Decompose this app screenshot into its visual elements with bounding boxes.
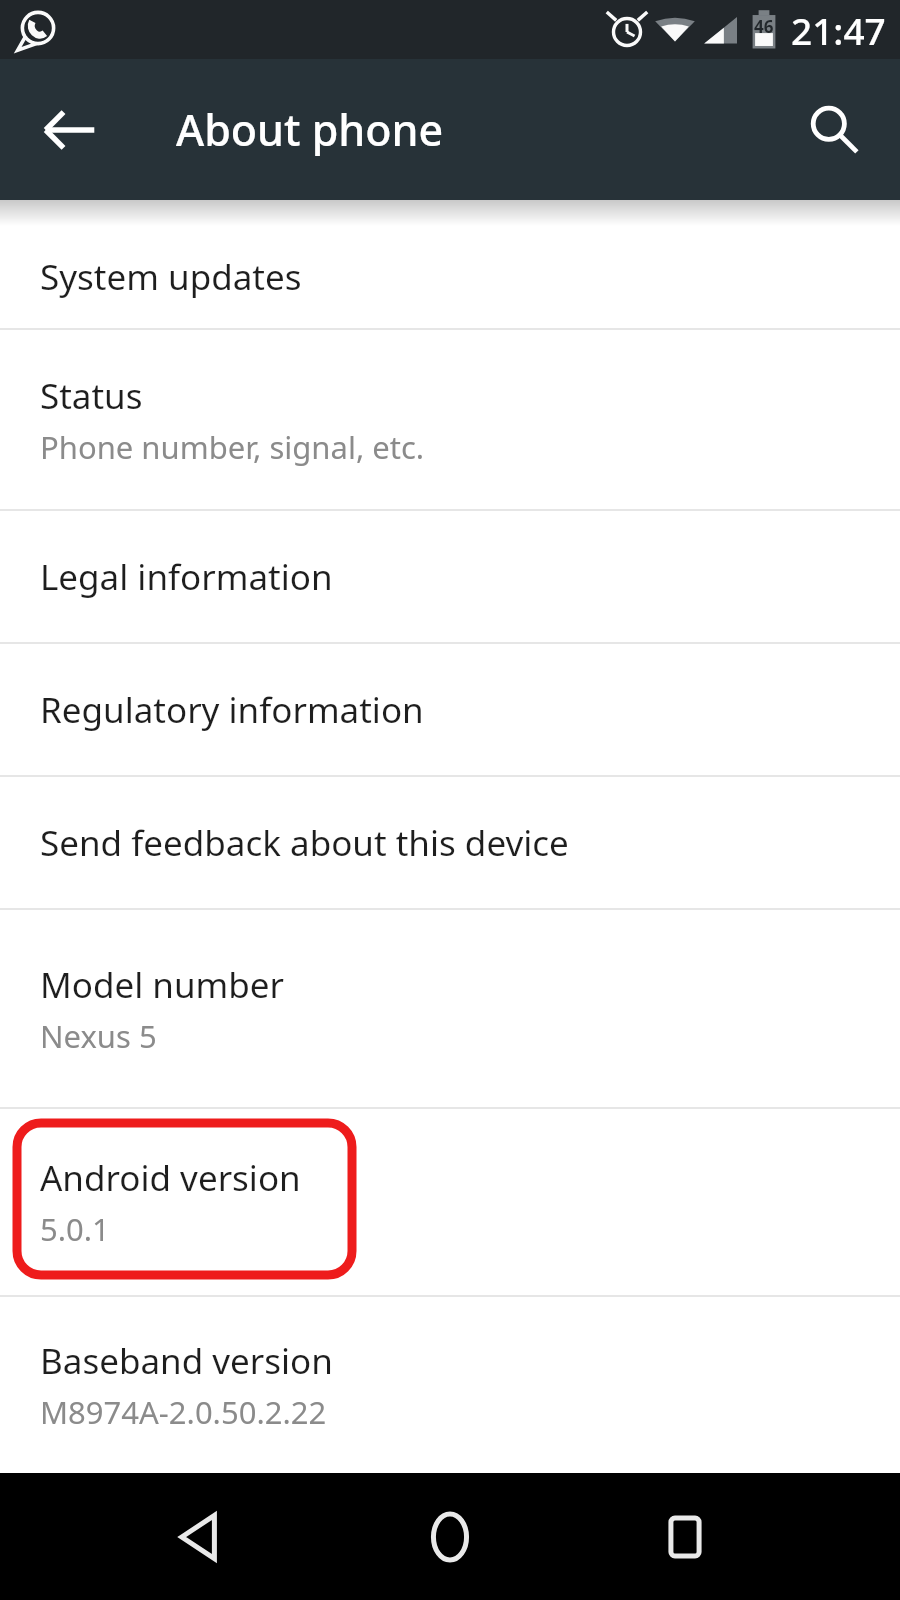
staticText: Regulatory information <box>40 686 424 734</box>
staticText: 21:47 <box>791 5 886 55</box>
button[interactable]: Search <box>786 82 882 178</box>
staticText: Send feedback about this device <box>40 819 569 867</box>
staticText: Model number <box>40 961 285 1009</box>
button[interactable]: Regulatory information <box>0 644 900 775</box>
staticText: System updates <box>40 253 302 301</box>
staticText: Baseband version <box>40 1337 333 1385</box>
button[interactable]: Back <box>22 82 118 178</box>
button[interactable]: Legal information <box>0 511 900 642</box>
button[interactable]: Recent apps <box>625 1477 745 1597</box>
button[interactable]: Back <box>140 1477 260 1597</box>
staticText: Nexus 5 <box>40 1015 157 1057</box>
staticText: M8974A-2.0.50.2.22 <box>40 1391 327 1433</box>
button[interactable]: Home <box>390 1477 510 1597</box>
staticText: 46 <box>754 15 774 38</box>
staticText: Legal information <box>40 553 333 601</box>
button[interactable]: Baseband version <box>0 1297 900 1473</box>
button[interactable]: Status <box>0 330 900 509</box>
button[interactable]: Model number <box>0 910 900 1107</box>
button[interactable]: System updates <box>0 226 900 328</box>
staticText: Phone number, signal, etc. <box>40 426 425 468</box>
button[interactable]: Send feedback about this device <box>0 777 900 908</box>
staticText: About phone <box>176 100 444 159</box>
staticText: Android version <box>40 1154 301 1202</box>
button[interactable]: Android version <box>0 1109 900 1295</box>
staticText: Status <box>40 372 143 420</box>
staticText: 5.0.1 <box>40 1208 110 1250</box>
